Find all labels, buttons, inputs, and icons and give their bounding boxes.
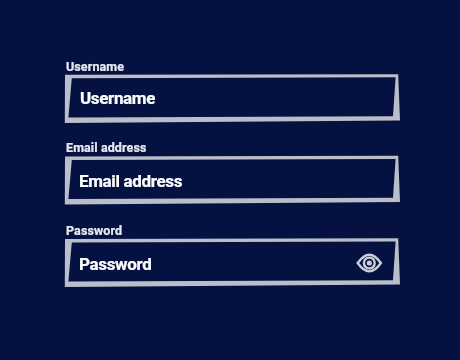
staticText: Password bbox=[79, 254, 152, 274]
staticText: Email address bbox=[79, 171, 183, 191]
button[interactable] bbox=[65, 75, 400, 123]
button[interactable] bbox=[65, 239, 400, 287]
button[interactable] bbox=[354, 248, 385, 279]
staticText: Password bbox=[66, 223, 123, 238]
button[interactable] bbox=[65, 156, 400, 204]
staticText: Email address bbox=[66, 140, 147, 155]
staticText: Username bbox=[66, 59, 125, 74]
staticText: Username bbox=[80, 88, 156, 108]
